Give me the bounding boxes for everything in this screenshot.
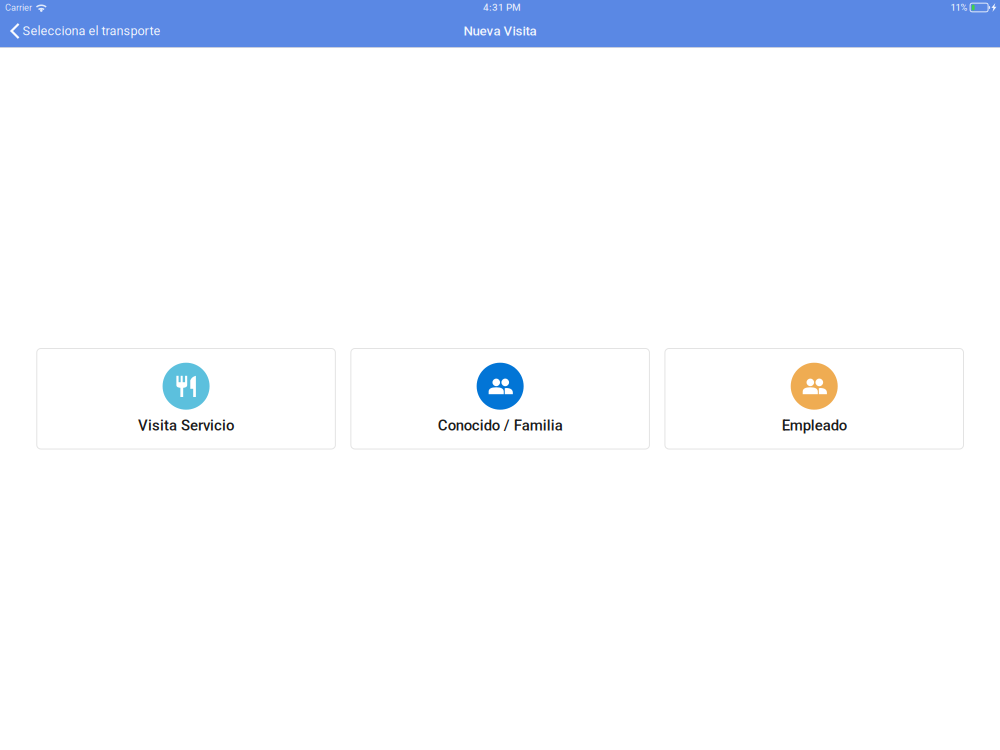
button[interactable]: Conocido / Familia (351, 348, 649, 449)
staticText: Nueva Visita (463, 23, 536, 39)
staticText: Conocido / Familia (438, 417, 563, 434)
staticText: Empleado (782, 417, 847, 434)
button[interactable]: Visita Servicio (37, 348, 335, 449)
staticText: 11% (951, 2, 968, 13)
staticText: 4:31 PM (483, 2, 521, 13)
staticText: Selecciona el transporte (22, 24, 160, 38)
staticText: Visita Servicio (138, 417, 234, 434)
staticText: Carrier (5, 2, 32, 13)
button[interactable]: Back (0, 15, 167, 46)
button[interactable]: Empleado (665, 348, 963, 449)
